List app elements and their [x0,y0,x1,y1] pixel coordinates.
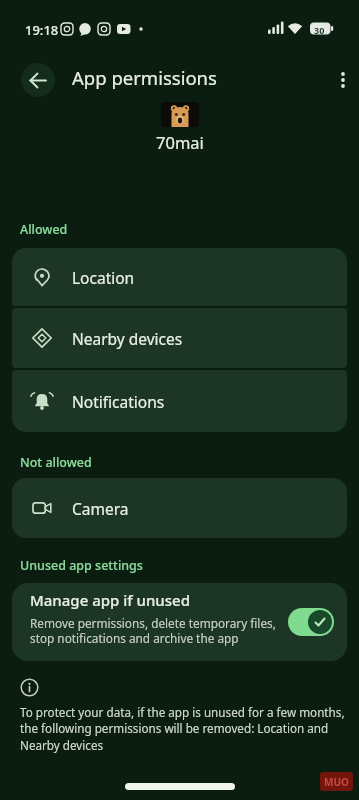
button[interactable]: Nearby devices [12,308,347,368]
staticText: Remove permissions, delete temporary fil… [30,615,276,647]
staticText: 30 [314,24,325,36]
button[interactable]: Notifications [12,370,347,432]
button[interactable] [326,63,359,97]
staticText: Not allowed [20,454,92,471]
button[interactable]: Camera [12,478,347,538]
staticText: Manage app if unused [30,590,190,610]
staticText: Location [72,267,135,288]
staticText: Allowed [20,221,68,238]
staticText: 70mai [156,131,204,153]
staticText: Nearby devices [72,328,183,349]
staticText: Unused app settings [20,557,143,574]
staticText: To protect your data, if the app is unus… [20,704,345,754]
staticText: 19:18 [25,21,59,39]
staticText: Camera [72,498,129,519]
button[interactable] [21,63,55,97]
button[interactable]: Manage app if unused [12,583,347,661]
staticText: Notifications [72,391,165,412]
staticText: App permissions [72,65,217,90]
staticText: MUO [324,775,349,789]
button[interactable] [288,608,334,636]
button[interactable]: Location [12,248,347,306]
